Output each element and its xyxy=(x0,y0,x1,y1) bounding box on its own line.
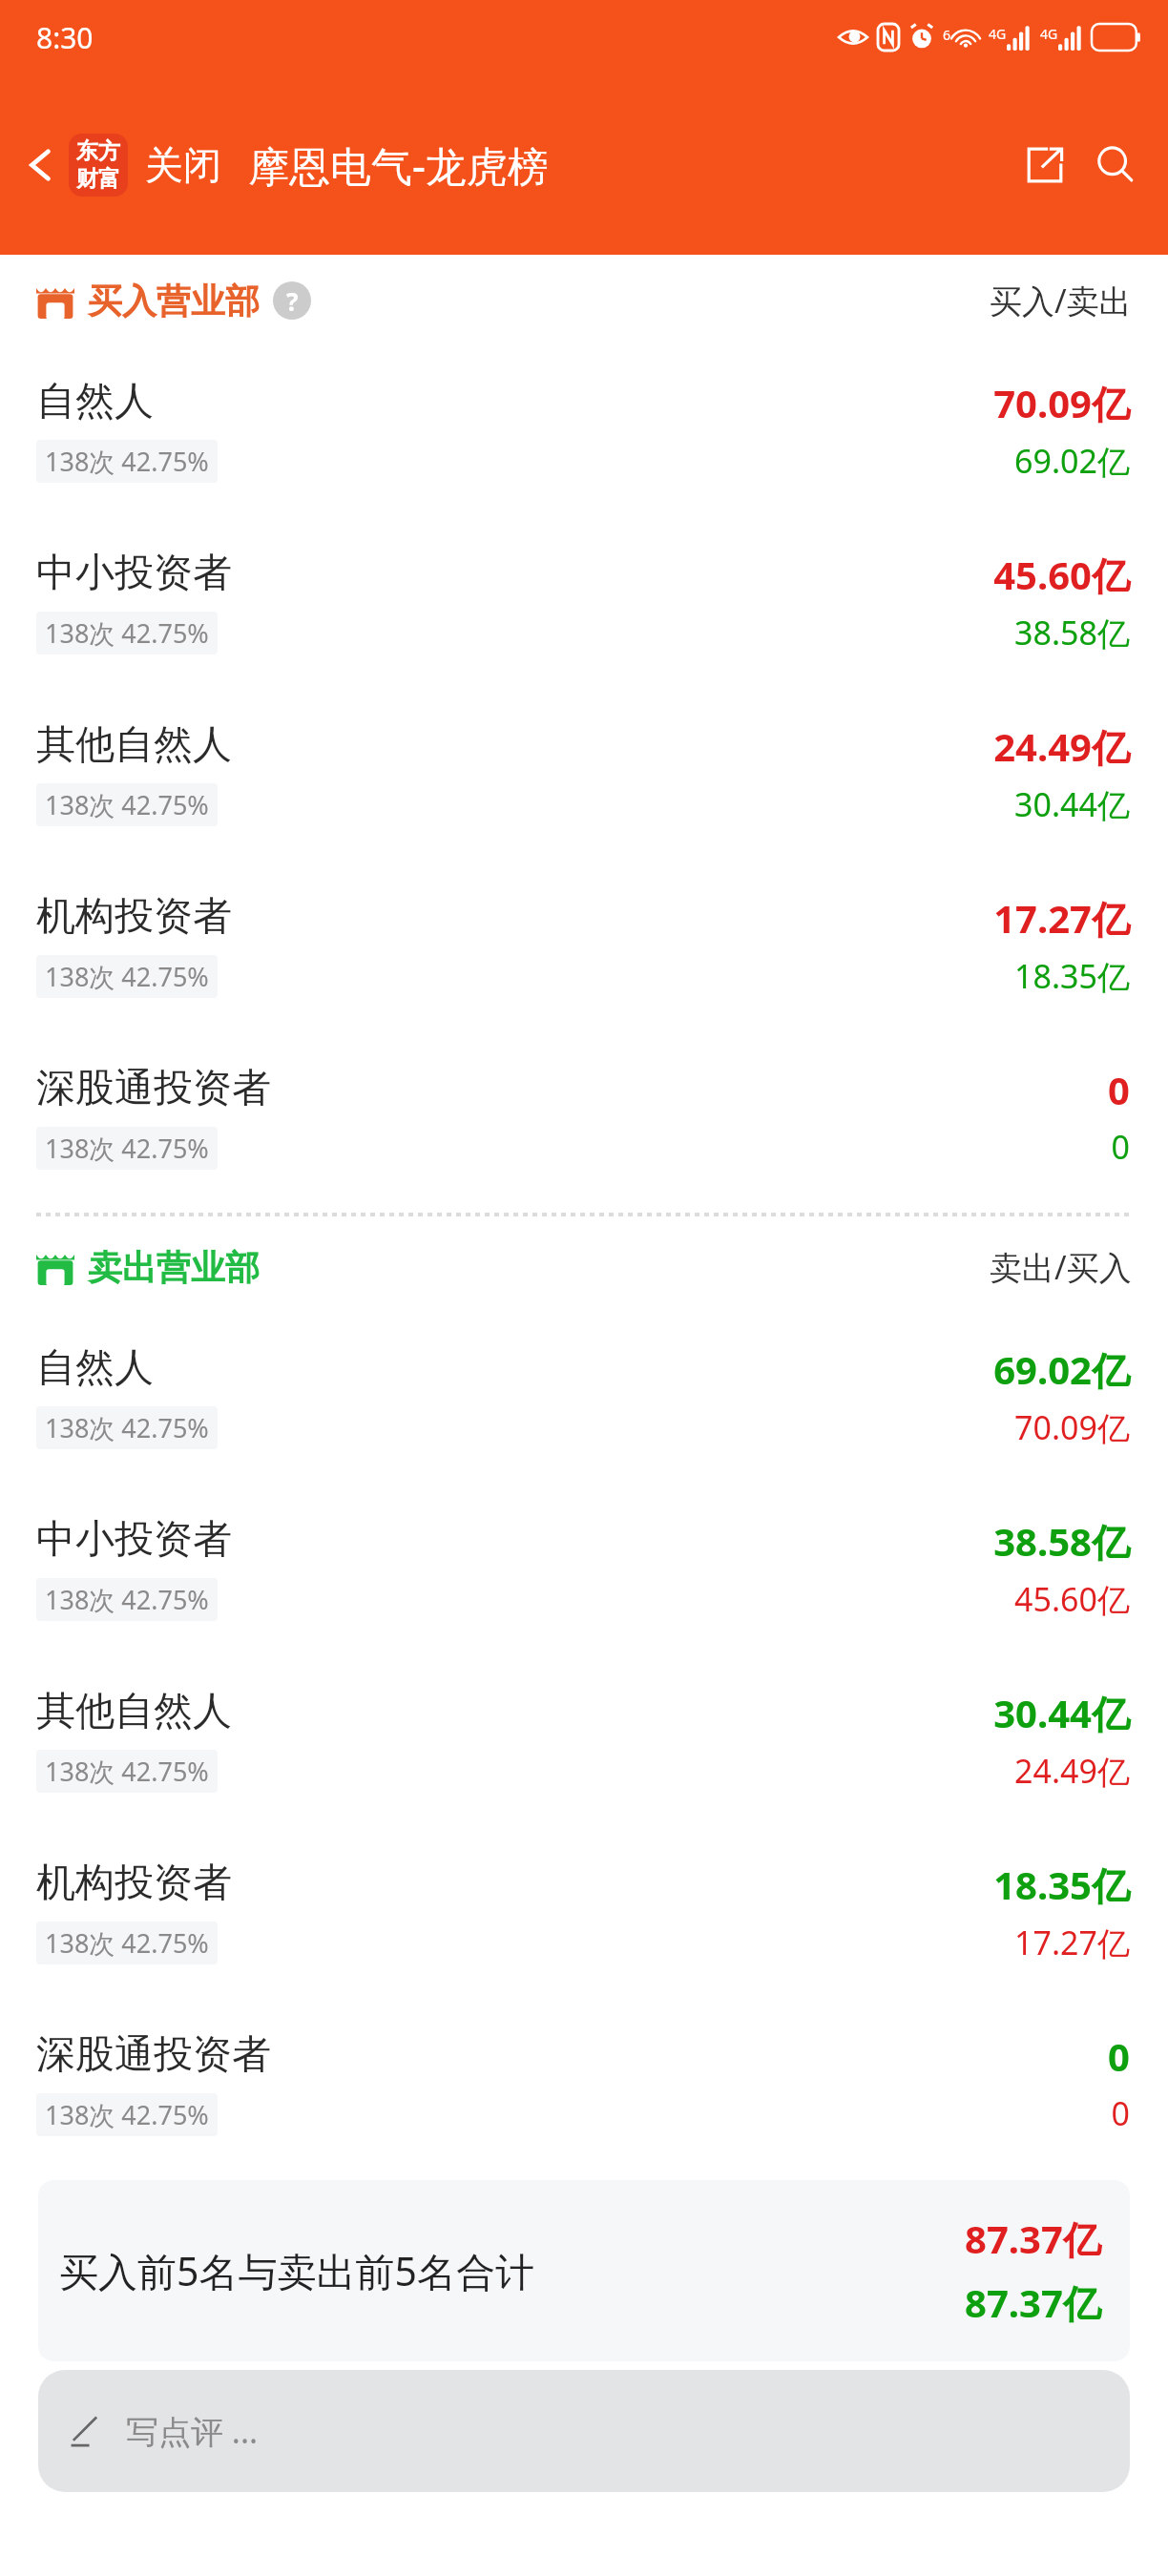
staticText: 财富 xyxy=(76,165,120,193)
staticText: 机构投资者 xyxy=(36,892,232,942)
staticText: 70.09亿 xyxy=(1014,1405,1130,1449)
staticText: 0 xyxy=(1111,2091,1130,2135)
staticText: 中小投资者 xyxy=(36,549,232,598)
staticText: 深股通投资者 xyxy=(36,1064,271,1113)
staticText: 17.27亿 xyxy=(993,892,1130,945)
staticText: 0 xyxy=(1111,1125,1130,1169)
staticText: 70.09亿 xyxy=(993,377,1130,429)
staticText: 其他自然人 xyxy=(36,720,232,770)
staticText: 东方 xyxy=(76,137,120,165)
staticText: 138次 42.75% xyxy=(45,615,209,651)
staticText: 138次 42.75% xyxy=(45,2097,209,2132)
staticText: 买入/卖出 xyxy=(990,279,1132,322)
staticText: 卖出/买入 xyxy=(990,1245,1132,1289)
staticText: 24.49亿 xyxy=(1014,1749,1130,1793)
button[interactable]: Back xyxy=(13,137,69,193)
staticText: 30.44亿 xyxy=(993,1687,1130,1739)
staticText: 45.60亿 xyxy=(1014,1577,1130,1621)
staticText: 关闭 xyxy=(145,141,221,189)
staticText: 38.58亿 xyxy=(1014,611,1130,654)
button[interactable]: 买入营业部 xyxy=(36,261,1132,340)
button[interactable]: 买入前5名与卖出前5名合计 xyxy=(38,2180,1130,2361)
staticText: 45.60亿 xyxy=(993,549,1130,601)
staticText: 138次 42.75% xyxy=(45,1582,209,1617)
button[interactable]: 机构投资者 xyxy=(0,859,1168,1030)
staticText: 138次 42.75% xyxy=(45,1131,209,1166)
button[interactable]: 机构投资者 xyxy=(0,1825,1168,1997)
staticText: 0 xyxy=(1108,2030,1130,2082)
staticText: 中小投资者 xyxy=(36,1515,232,1565)
staticText: 18.35亿 xyxy=(1014,954,1130,998)
staticText: 买入前5名与卖出前5名合计 xyxy=(59,2244,534,2297)
staticText: 138次 42.75% xyxy=(45,1925,209,1961)
staticText: 写点评 ... xyxy=(126,2409,259,2453)
staticText: 6 xyxy=(943,26,951,44)
button[interactable]: 深股通投资者 xyxy=(0,1997,1168,2169)
staticText: 38.58亿 xyxy=(993,1515,1130,1568)
staticText: 买入营业部 xyxy=(88,280,260,322)
button[interactable]: Search xyxy=(1080,130,1151,200)
button[interactable]: 其他自然人 xyxy=(0,687,1168,859)
button[interactable]: 关闭 xyxy=(145,141,221,189)
staticText: 87.37亿 xyxy=(965,2276,1101,2329)
button[interactable]: 其他自然人 xyxy=(0,1653,1168,1825)
staticText: 138次 42.75% xyxy=(45,444,209,479)
staticText: 69.02亿 xyxy=(1014,439,1130,483)
staticText: 138次 42.75% xyxy=(45,959,209,994)
staticText: 138次 42.75% xyxy=(45,1410,209,1445)
button[interactable]: 自然人 xyxy=(0,343,1168,515)
staticText: 18.35亿 xyxy=(993,1859,1130,1911)
button[interactable]: 深股通投资者 xyxy=(0,1030,1168,1202)
staticText: 自然人 xyxy=(36,377,154,426)
staticText: 8:30 xyxy=(36,18,94,57)
button[interactable]: 中小投资者 xyxy=(0,515,1168,687)
button[interactable]: 自然人 xyxy=(0,1310,1168,1482)
staticText: 深股通投资者 xyxy=(36,2030,271,2080)
staticText: 摩恩电气-龙虎榜 xyxy=(248,137,549,194)
staticText: 17.27亿 xyxy=(1014,1921,1130,1964)
staticText: 卖出营业部 xyxy=(88,1246,260,1289)
button[interactable]: Help xyxy=(273,281,311,320)
staticText: 4G xyxy=(1040,25,1058,43)
button[interactable]: 东方财富 xyxy=(69,134,128,197)
button[interactable]: 写点评 ... xyxy=(67,2370,1130,2492)
staticText: 0 xyxy=(1108,1064,1130,1115)
staticText: 其他自然人 xyxy=(36,1687,232,1736)
button[interactable]: Share xyxy=(1010,130,1080,200)
staticText: 69.02亿 xyxy=(993,1343,1130,1396)
staticText: 自然人 xyxy=(36,1343,154,1393)
button[interactable]: 中小投资者 xyxy=(0,1482,1168,1653)
staticText: 30.44亿 xyxy=(1014,782,1130,826)
staticText: 24.49亿 xyxy=(993,720,1130,773)
staticText: 138次 42.75% xyxy=(45,1754,209,1789)
staticText: 机构投资者 xyxy=(36,1859,232,1908)
staticText: 4G xyxy=(989,25,1007,43)
staticText: 87.37亿 xyxy=(965,2212,1101,2265)
button[interactable]: 卖出营业部 xyxy=(36,1228,1132,1306)
staticText: ? xyxy=(286,284,299,318)
staticText: 138次 42.75% xyxy=(45,787,209,822)
